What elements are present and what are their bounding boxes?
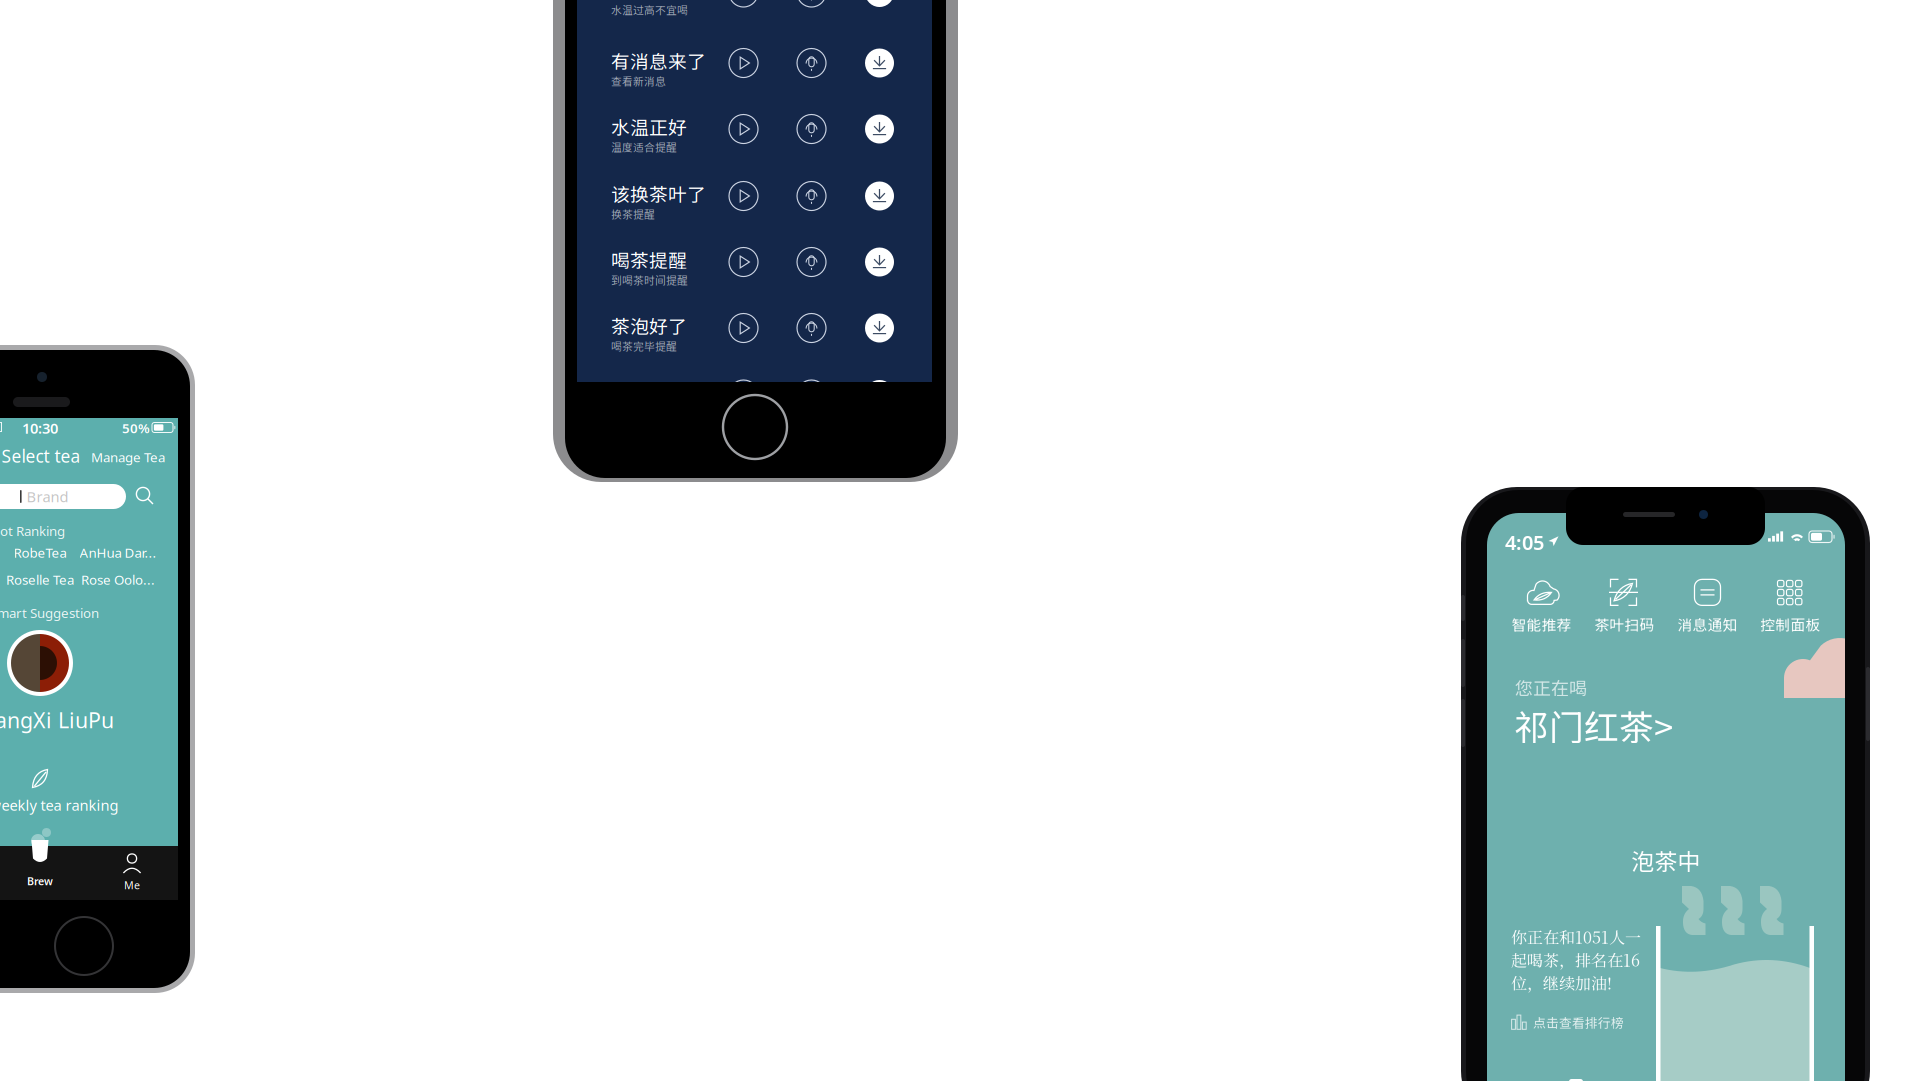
button[interactable]: 点击查看排行榜 xyxy=(1511,1013,1624,1031)
button[interactable]: See weekly tea ranking xyxy=(0,795,118,815)
staticText: Brand xyxy=(27,487,69,506)
staticText: Hot Ranking xyxy=(0,522,65,540)
staticText: 喝茶完毕提醒 xyxy=(611,338,677,353)
button[interactable]: 茶叶扫码 xyxy=(1583,577,1666,635)
button[interactable]: Download 有消息来了 xyxy=(865,48,894,77)
button[interactable]: 智能推荐 xyxy=(1500,577,1583,635)
staticText: 起喝茶，排名在16 xyxy=(1511,948,1640,971)
staticText: 祁门红茶> xyxy=(1514,700,1673,750)
button[interactable]: Me xyxy=(86,846,178,900)
button[interactable]: Record 水温正好 xyxy=(797,114,826,143)
staticText: 茶叶扫码 xyxy=(1594,613,1654,635)
button[interactable]: Play 该换茶叶了 xyxy=(729,181,758,210)
staticText: 您正在喝 xyxy=(1515,674,1587,700)
button[interactable]: Record 茶泡好了 xyxy=(797,313,826,342)
staticText: Me xyxy=(124,878,140,892)
button[interactable]: Brew xyxy=(0,846,86,900)
staticText: 换茶提醒 xyxy=(611,206,655,221)
staticText: GuangXi LiuPu xyxy=(0,706,114,734)
button[interactable]: Record 有消息来了 xyxy=(797,48,826,77)
staticText: Rose Oolo... xyxy=(81,571,155,588)
button[interactable]: Download 喝茶提醒 xyxy=(865,247,894,276)
staticText: 有消息来了 xyxy=(611,47,706,74)
staticText: See weekly tea ranking xyxy=(0,795,118,815)
button[interactable]: Download 该换茶叶了 xyxy=(865,181,894,210)
staticText: 消息通知 xyxy=(1677,613,1737,635)
staticText: 点击查看排行榜 xyxy=(1533,1013,1624,1031)
button[interactable]: Roselle Tea xyxy=(1,569,79,590)
button[interactable]: Rose Oolo... xyxy=(79,569,157,590)
staticText: Smart Suggestion xyxy=(0,604,99,622)
button[interactable]: Select tea xyxy=(1,444,80,467)
staticText: 该换茶叶了 xyxy=(611,180,706,207)
staticText: 温度适合提醒 xyxy=(611,139,677,154)
staticText: RobeTea xyxy=(13,544,66,561)
button[interactable]: Record 该换茶叶了 xyxy=(797,181,826,210)
button[interactable]: 控制面板 xyxy=(1749,577,1832,635)
staticText: Manage Tea xyxy=(91,448,165,466)
button[interactable]: AnHua Dar... xyxy=(79,542,157,563)
button[interactable]: 祁门红茶> xyxy=(1514,700,1673,750)
staticText: 泡茶中 xyxy=(1631,844,1700,876)
button[interactable]: 消息通知 xyxy=(1666,577,1749,635)
staticText: 查看新消息 xyxy=(611,73,666,88)
staticText: Select tea xyxy=(1,444,80,467)
staticText: 10:30 xyxy=(22,418,58,438)
button[interactable]: Play 有消息来了 xyxy=(729,48,758,77)
staticText: AnHua Dar... xyxy=(79,544,156,561)
button[interactable]: Download 茶泡好了 xyxy=(865,313,894,342)
staticText: 控制面板 xyxy=(1760,613,1820,635)
staticText: 位，继续加油! xyxy=(1511,971,1612,994)
staticText: Brew xyxy=(27,874,53,888)
staticText: 4:05 xyxy=(1505,529,1544,556)
staticText: 到喝茶时间提醒 xyxy=(611,272,688,287)
staticText: Roselle Tea xyxy=(6,571,74,588)
button[interactable]: Play 喝茶提醒 xyxy=(729,247,758,276)
button[interactable]: RobeTea xyxy=(1,542,79,563)
staticText: 智能推荐 xyxy=(1511,613,1571,635)
staticText: 水温正好 xyxy=(611,113,687,140)
staticText: 喝茶提醒 xyxy=(611,246,687,273)
button[interactable]: Play 水温正好 xyxy=(729,114,758,143)
button[interactable]: Play 茶泡好了 xyxy=(729,313,758,342)
button[interactable]: Download 水温正好 xyxy=(865,114,894,143)
staticText: 水温过高不宜喝 xyxy=(611,2,688,17)
button[interactable]: Manage Tea xyxy=(91,448,165,466)
staticText: 茶泡好了 xyxy=(611,312,687,339)
button[interactable]: Record 喝茶提醒 xyxy=(797,247,826,276)
button[interactable]: Search xyxy=(135,486,156,507)
staticText: 50% xyxy=(122,419,150,437)
staticText: 你正在和1051人一 xyxy=(1511,925,1641,948)
